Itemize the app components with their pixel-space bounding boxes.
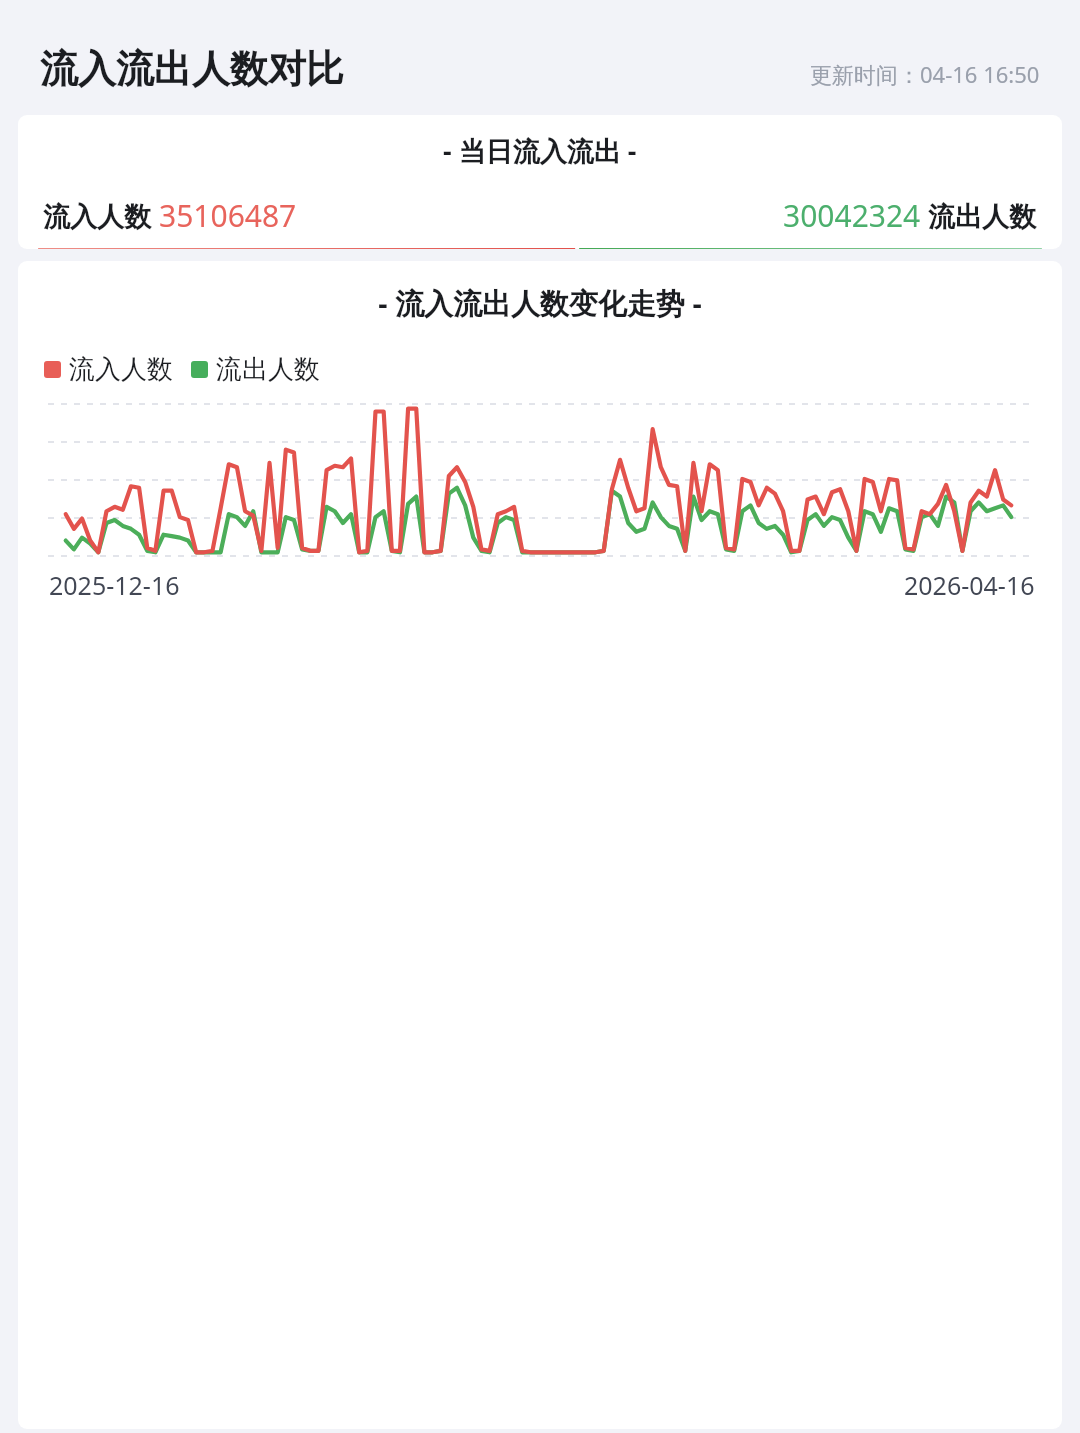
staticText: 流入人数 — [69, 353, 173, 386]
staticText: 35106487 — [159, 195, 297, 236]
staticText: 流出人数 — [921, 197, 1037, 234]
staticText: 2025-12-16 — [49, 568, 180, 602]
staticText: 30042324 — [783, 195, 921, 236]
staticText: 2026-04-16 — [904, 568, 1035, 602]
staticText: - 当日流入流出 - — [443, 132, 637, 169]
staticText: 更新时间：04-16 16:50 — [810, 59, 1040, 89]
button[interactable]: - 流入流出人数变化走势 - — [18, 261, 1062, 1429]
staticText: 流入流出人数对比 — [40, 45, 344, 93]
staticText: 流出人数 — [216, 353, 320, 386]
button[interactable]: - 当日流入流出 - — [18, 115, 1062, 249]
staticText: - 流入流出人数变化走势 - — [18, 283, 1062, 323]
staticText: 流入人数 — [43, 197, 159, 234]
